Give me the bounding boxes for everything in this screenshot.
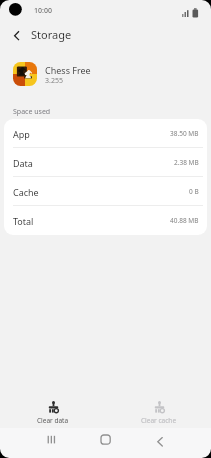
button[interactable]: Total — [4, 206, 207, 235]
staticText: App — [13, 128, 30, 140]
staticText: Clear cache — [141, 416, 177, 425]
button[interactable]: Clear data — [0, 401, 105, 431]
staticText: Storage — [31, 27, 72, 42]
staticText: 2.38 MB — [174, 158, 199, 167]
staticText: 38.50 MB — [170, 129, 199, 138]
staticText: Chess Free — [45, 64, 91, 76]
button[interactable]: App — [4, 119, 207, 148]
staticText: Total — [13, 215, 34, 227]
button[interactable] — [83, 428, 128, 454]
button[interactable]: Cache — [4, 177, 207, 206]
staticText: Data — [13, 157, 33, 169]
button[interactable]: Storage — [0, 24, 90, 46]
staticText: 10:00 — [34, 6, 52, 16]
button[interactable] — [30, 428, 75, 454]
staticText: Clear data — [37, 416, 69, 425]
staticText: Cache — [13, 186, 39, 198]
staticText: 40.88 MB — [170, 216, 199, 225]
button[interactable]: Data — [4, 148, 207, 177]
staticText: Space used — [13, 107, 51, 117]
button[interactable] — [138, 428, 183, 454]
staticText: 3.255 — [45, 76, 63, 86]
button[interactable]: Clear cache — [106, 401, 211, 431]
staticText: 0 B — [189, 187, 199, 196]
